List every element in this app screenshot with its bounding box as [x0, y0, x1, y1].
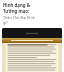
button[interactable]: Hình dạng &: [3, 2, 62, 25]
staticText: gì?: [3, 20, 62, 25]
staticText: Tướng mạo:: [3, 8, 62, 14]
button[interactable]: Mở bài viết Thần Chú Đại Bi: [2, 28, 62, 72]
staticText: Thần Chú Đại Bi là: [3, 15, 62, 20]
staticText: Hình dạng &: [3, 2, 62, 8]
